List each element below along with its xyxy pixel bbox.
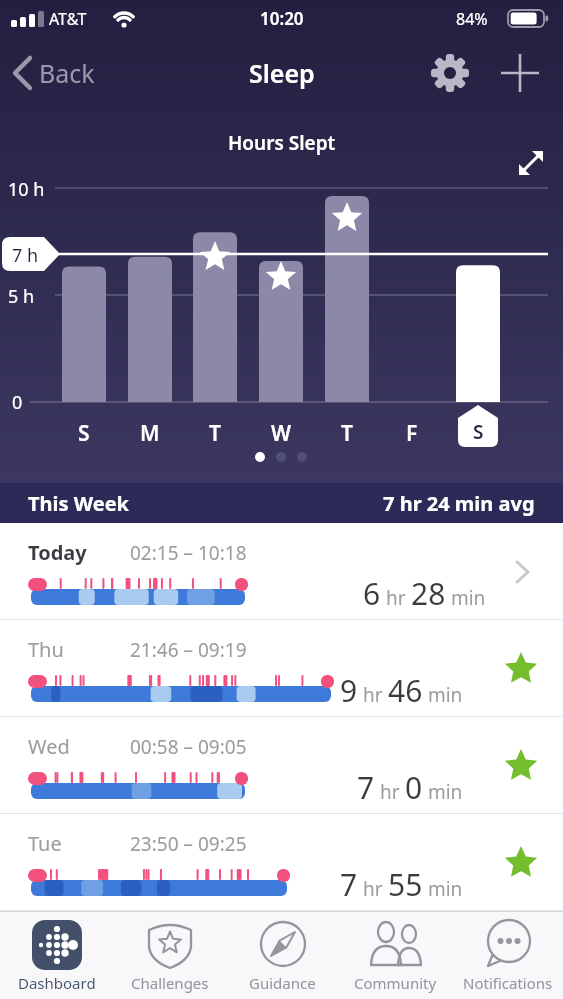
staticText: 21:46 – 09:19 [130,637,247,663]
staticText: 23:50 – 09:25 [130,831,247,857]
staticText: 10 h [8,177,45,202]
button[interactable]: Back [10,55,95,91]
staticText: min [423,779,463,805]
staticText: Sleep [249,56,315,90]
staticText: Challenges [131,973,209,993]
button[interactable]: Guidance [226,911,339,999]
button[interactable]: Challenges [113,911,226,999]
button[interactable] [428,51,472,95]
staticText: 00:58 – 09:05 [130,734,247,760]
staticText: W [271,419,292,448]
staticText: T [341,419,353,448]
staticText: min [423,876,463,902]
staticText: Thu [28,636,64,663]
staticText: 7 [357,767,375,808]
staticText: 10:20 [260,7,304,30]
staticText: Back [39,56,95,90]
staticText: T [209,419,221,448]
staticText: 84% [456,8,488,30]
staticText: Dashboard [18,973,96,993]
staticText: Community [354,973,437,993]
staticText: hr [358,682,388,708]
button[interactable]: Tue [0,814,563,911]
staticText: AT&T [49,8,87,30]
staticText: 0 [12,390,23,415]
button[interactable]: Today [0,523,563,620]
staticText: 9 [340,670,358,711]
button[interactable]: Notifications [452,911,563,999]
staticText: hr [375,779,405,805]
staticText: 7 h [12,243,39,268]
staticText: Hours Slept [228,130,336,156]
staticText: Guidance [249,973,316,993]
button[interactable]: Dashboard [0,911,113,999]
staticText: S [78,419,90,448]
staticText: 28 [411,573,446,614]
staticText: min [423,682,463,708]
staticText: 55 [388,864,423,905]
staticText: 7 hr 24 min avg [383,490,535,517]
staticText: 6 [363,573,381,614]
staticText: F [406,419,418,448]
button[interactable]: Thu [0,620,563,717]
staticText: 5 h [8,284,35,309]
button[interactable]: Community [339,911,452,999]
staticText: 46 [388,670,423,711]
button[interactable]: Wed [0,717,563,814]
staticText: S [473,419,484,445]
staticText: Wed [28,733,70,760]
staticText: Notifications [463,973,553,993]
staticText: 0 [405,767,423,808]
staticText: M [140,419,160,448]
staticText: 02:15 – 10:18 [130,540,247,566]
staticText: Today [28,539,87,566]
staticText: This Week [28,490,129,517]
staticText: min [446,585,486,611]
staticText: Tue [28,830,62,857]
staticText: hr [358,876,388,902]
button[interactable] [498,51,542,95]
staticText: 7 [340,864,358,905]
staticText: hr [381,585,411,611]
